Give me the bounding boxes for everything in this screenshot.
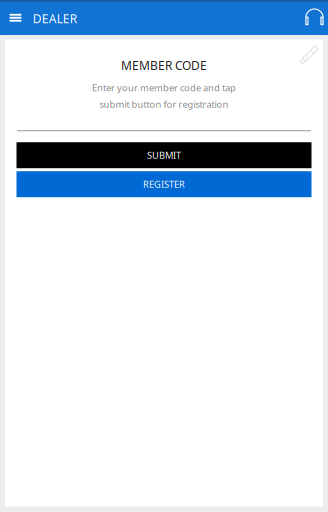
staticText: REGISTER [143,178,185,190]
button[interactable]: Edit [299,39,323,65]
staticText: DEALER [33,10,77,26]
staticText: Enter your member code and tap [92,81,236,94]
button[interactable]: Customer support [298,3,324,34]
button[interactable]: Menu [10,3,33,34]
button[interactable]: REGISTER [16,171,311,197]
staticText: submit button for registration [99,98,228,110]
staticText: SUBMIT [147,149,181,161]
button[interactable]: SUBMIT [16,142,311,168]
staticText: MEMBER CODE [121,57,207,73]
